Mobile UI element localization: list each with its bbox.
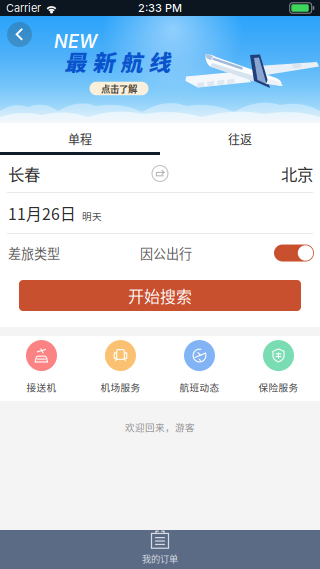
button[interactable]: 机场服务 bbox=[81, 340, 160, 394]
staticText: 因公出行 bbox=[140, 243, 192, 262]
staticText: Carrier bbox=[6, 1, 41, 15]
button[interactable]: 单程 bbox=[0, 123, 160, 155]
button[interactable]: 保险服务 bbox=[239, 340, 318, 394]
button[interactable]: Business travel bbox=[274, 238, 314, 268]
button[interactable]: 长春 bbox=[8, 154, 70, 193]
staticText: 开始搜索 bbox=[128, 284, 192, 307]
staticText: 点击了解 bbox=[101, 82, 137, 95]
staticText: 欢迎回来，游客 bbox=[125, 420, 195, 434]
button[interactable]: 开始搜索 bbox=[19, 280, 301, 311]
staticText: 往返 bbox=[228, 130, 252, 148]
button[interactable]: 11月26日 bbox=[0, 193, 320, 233]
staticText: 2:33 PM bbox=[138, 1, 182, 15]
staticText: 机场服务 bbox=[100, 380, 140, 394]
button[interactable]: 点击了解 bbox=[89, 82, 148, 95]
staticText: 长春 bbox=[8, 162, 40, 185]
staticText: 差旅类型 bbox=[8, 243, 60, 262]
staticText: 保险服务 bbox=[258, 380, 298, 394]
button[interactable]: 航班动态 bbox=[160, 340, 239, 394]
staticText: 11月26日 bbox=[8, 202, 76, 224]
button[interactable]: 我的订单 bbox=[0, 530, 320, 569]
staticText: 单程 bbox=[68, 130, 92, 148]
staticText: NEW bbox=[54, 31, 97, 52]
staticText: 航班动态 bbox=[179, 380, 219, 394]
button[interactable]: 往返 bbox=[160, 123, 320, 155]
staticText: 我的订单 bbox=[142, 552, 178, 565]
button[interactable]: 接送机 bbox=[2, 340, 81, 394]
staticText: 接送机 bbox=[26, 380, 56, 394]
staticText: 北京 bbox=[281, 162, 313, 185]
staticText: 最新航线 bbox=[65, 49, 171, 75]
button[interactable]: Swap origin and destination bbox=[146, 159, 174, 187]
button[interactable]: 北京 bbox=[251, 154, 313, 193]
staticText: 明天 bbox=[82, 209, 102, 223]
button[interactable]: Back bbox=[4, 19, 35, 50]
